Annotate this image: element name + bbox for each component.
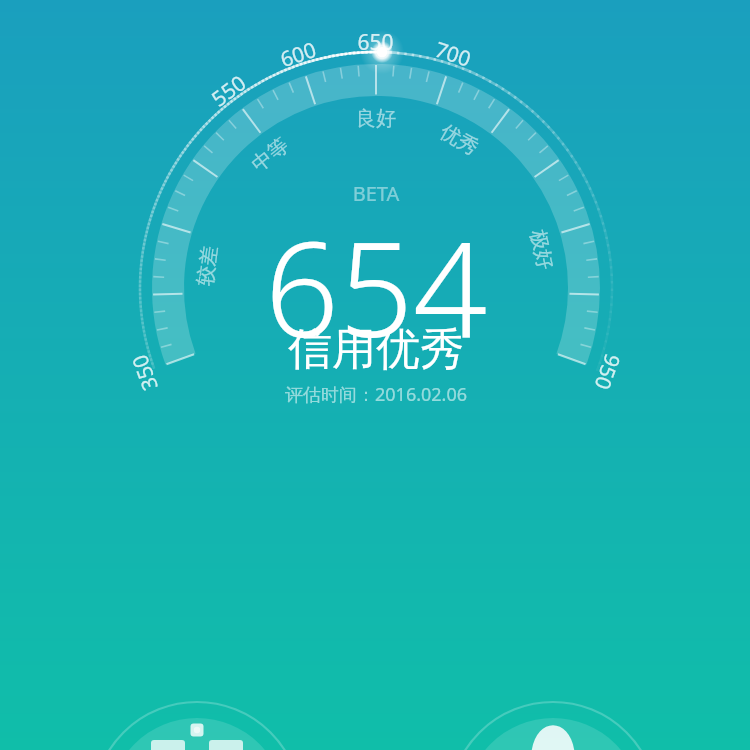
button[interactable]: Credit report bbox=[0, 0, 750, 750]
button[interactable]: Credit life bbox=[0, 0, 750, 750]
